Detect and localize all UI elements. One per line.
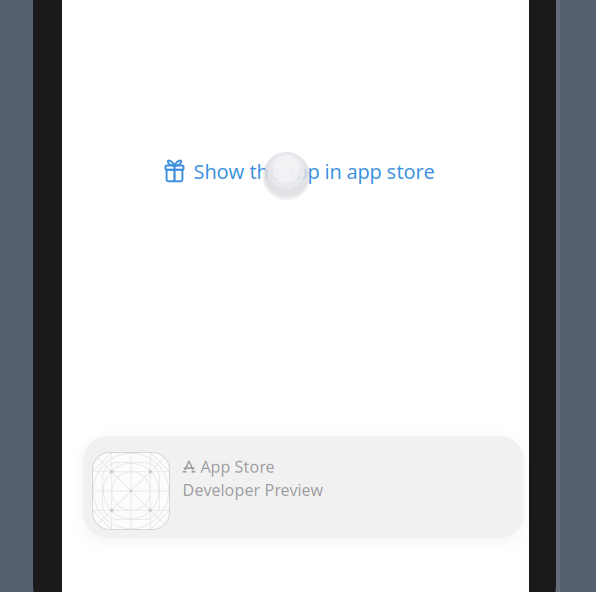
staticText: Show the app in app store — [193, 158, 434, 185]
staticText: Developer Preview — [182, 479, 323, 500]
button[interactable]: App Store — [83, 436, 523, 538]
staticText: App Store — [200, 456, 274, 477]
button[interactable]: Show the app in app store — [156, 158, 434, 185]
